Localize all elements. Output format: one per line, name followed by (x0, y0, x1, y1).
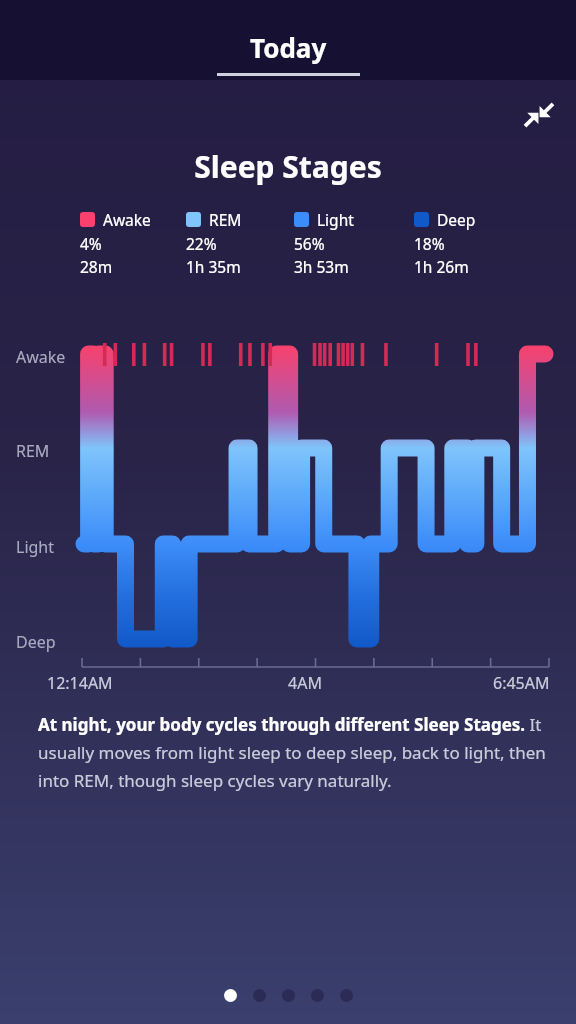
staticText: 6:45AM (493, 672, 550, 694)
staticText: Today (250, 30, 327, 65)
button[interactable]: Page 2 (253, 989, 266, 1002)
button[interactable]: Light (294, 209, 354, 275)
staticText: 12:14AM (47, 672, 113, 694)
button[interactable]: Page 1 (224, 989, 237, 1002)
button[interactable]: Today (193, 30, 384, 80)
staticText: At night, your body cycles through diffe… (38, 713, 552, 792)
staticText: 1h 26m (414, 256, 469, 275)
staticText: 1h 35m (186, 256, 241, 275)
staticText: REM (209, 209, 242, 230)
staticText: 56% (294, 233, 325, 254)
staticText: 22% (186, 233, 217, 254)
staticText: 4AM (288, 672, 322, 694)
staticText: 28m (80, 256, 113, 275)
staticText: Light (317, 209, 354, 230)
staticText: Deep (437, 209, 476, 230)
button[interactable]: REM (186, 209, 242, 275)
button[interactable]: Collapse (516, 92, 562, 138)
staticText: Sleep Stages (0, 146, 576, 187)
staticText: 18% (414, 233, 445, 254)
button[interactable]: Awake (80, 209, 151, 275)
staticText: Light (16, 536, 55, 558)
button[interactable]: Page 5 (340, 989, 353, 1002)
button[interactable]: Page 4 (311, 989, 324, 1002)
staticText: 3h 53m (294, 256, 349, 275)
staticText: Awake (16, 346, 66, 368)
staticText: REM (16, 440, 50, 462)
staticText: Awake (103, 209, 151, 230)
button[interactable]: Deep (414, 209, 476, 275)
staticText: 4% (80, 233, 102, 254)
staticText: Deep (16, 631, 56, 653)
button[interactable]: Page 3 (282, 989, 295, 1002)
